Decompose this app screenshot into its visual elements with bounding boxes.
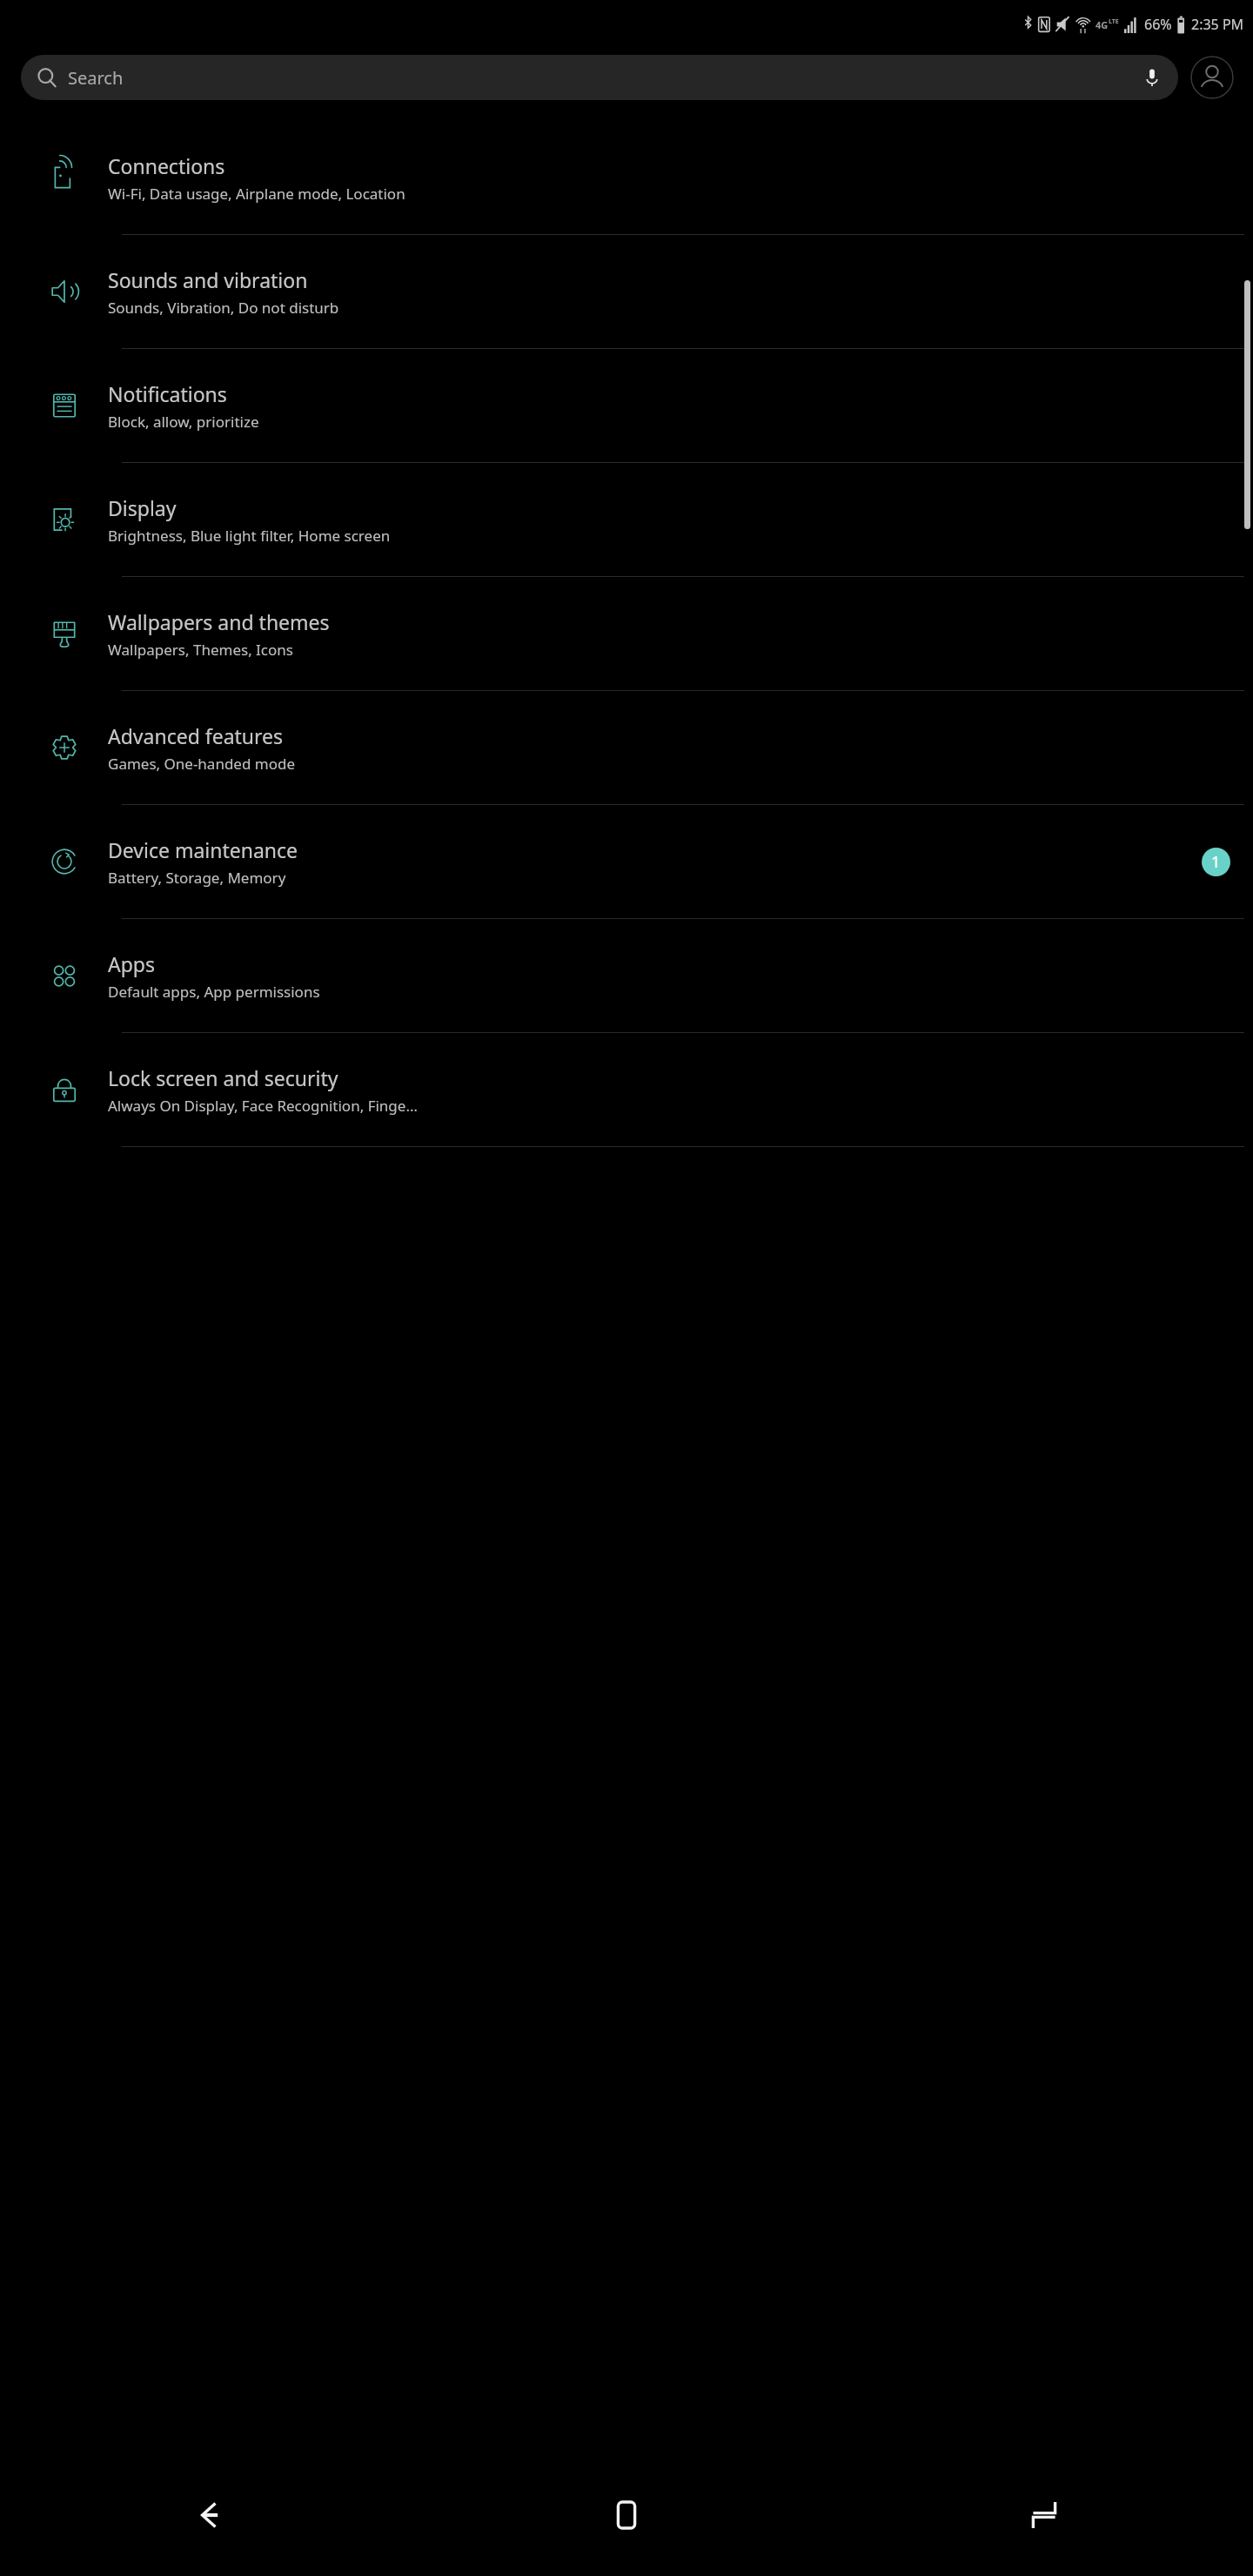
button[interactable]: Apps (0, 919, 1253, 1032)
staticText: Wi-Fi, Data usage, Airplane mode, Locati… (108, 184, 405, 204)
button[interactable]: Display (0, 463, 1253, 576)
other: Voice search (1142, 67, 1163, 88)
staticText: Always On Display, Face Recognition, Fin… (108, 1096, 418, 1116)
button[interactable]: Recents (835, 2454, 1253, 2576)
staticText: Block, allow, prioritize (108, 412, 259, 432)
staticText: Sounds and vibration (108, 266, 308, 293)
staticText: Connections (108, 152, 225, 179)
button[interactable]: Account (1190, 56, 1234, 99)
staticText: Default apps, App permissions (108, 982, 320, 1002)
button[interactable]: Home (418, 2454, 835, 2576)
staticText: Wallpapers, Themes, Icons (108, 640, 293, 660)
staticText: Wallpapers and themes (108, 608, 330, 635)
staticText: Search (68, 66, 124, 90)
staticText: Notifications (108, 380, 227, 407)
button[interactable]: Device maintenance (0, 805, 1253, 918)
button[interactable]: Back (0, 2454, 418, 2576)
button[interactable]: Sounds and vibration (0, 235, 1253, 348)
button[interactable]: Connections (0, 121, 1253, 234)
button[interactable]: Search (21, 55, 1178, 100)
button[interactable]: Wallpapers and themes (0, 577, 1253, 690)
staticText: Advanced features (108, 722, 284, 749)
staticText: Device maintenance (108, 836, 298, 863)
button[interactable]: Lock screen and security (0, 1033, 1253, 1146)
button[interactable]: Advanced features (0, 691, 1253, 804)
staticText: 1 (1211, 851, 1221, 873)
staticText: Brightness, Blue light filter, Home scre… (108, 526, 391, 546)
staticText: Games, One-handed mode (108, 754, 296, 774)
staticText: Sounds, Vibration, Do not disturb (108, 298, 339, 318)
staticText: Lock screen and security (108, 1064, 338, 1091)
button[interactable]: Notifications (0, 349, 1253, 462)
staticText: Battery, Storage, Memory (108, 868, 286, 888)
staticText: 4G (1096, 18, 1109, 31)
staticText: LTE (1109, 17, 1119, 26)
staticText: Display (108, 494, 177, 521)
staticText: 2:35 PM (1191, 15, 1244, 34)
staticText: Apps (108, 950, 156, 977)
staticText: 66% (1144, 15, 1172, 34)
